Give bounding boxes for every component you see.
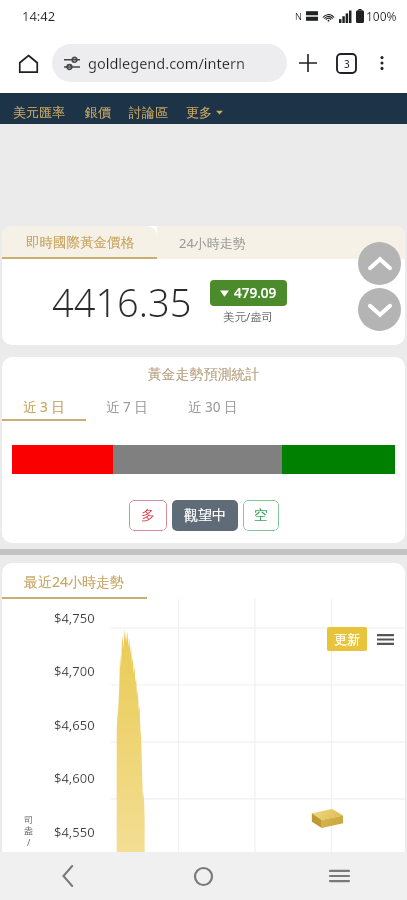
button[interactable]: 近 7 日	[86, 392, 168, 421]
button[interactable]: 479.09	[210, 280, 287, 306]
staticText: 近 7 日	[106, 398, 148, 416]
staticText: 觀望中	[184, 507, 226, 525]
button[interactable]: Recent apps	[271, 852, 407, 900]
button[interactable]: Tabs: 3	[327, 44, 365, 82]
staticText: $4,600	[54, 769, 95, 787]
staticText: 空	[254, 507, 268, 525]
button[interactable]: 更多	[186, 104, 223, 120]
button[interactable]: 最近24小時走勢	[2, 563, 147, 599]
button[interactable]: 空	[243, 500, 279, 531]
staticText: goldlegend.com/intern	[88, 53, 245, 73]
button[interactable]: 美元匯率	[13, 104, 65, 120]
staticText: 即時國際黃金價格	[26, 234, 134, 251]
button[interactable]: 更新	[327, 627, 367, 651]
staticText: 美元/盎司	[223, 309, 274, 325]
staticText: 更多	[186, 104, 212, 120]
staticText: $4,650	[54, 716, 95, 734]
staticText: 近 30 日	[188, 398, 238, 416]
button[interactable]: 多	[129, 500, 167, 531]
staticText: 近 3 日	[23, 398, 65, 416]
button[interactable]: 即時國際黃金價格	[2, 226, 157, 259]
staticText: 黃金走勢預測統計	[2, 366, 405, 384]
button[interactable]: Scroll up	[358, 242, 401, 285]
staticText: $4,700	[54, 662, 95, 680]
staticText: 美元匯率	[13, 104, 65, 120]
button[interactable]: goldlegend.com/intern	[52, 44, 287, 82]
staticText: $4,550	[54, 823, 95, 841]
staticText: 盎	[24, 825, 33, 836]
staticText: 司	[24, 814, 33, 825]
button[interactable]: Back	[0, 852, 135, 900]
button[interactable]: 近 30 日	[168, 392, 258, 421]
staticText: 4416.35	[52, 276, 192, 328]
button[interactable]: 24小時走勢	[157, 226, 405, 259]
staticText: 479.09	[234, 284, 277, 302]
staticText: 更新	[334, 631, 360, 647]
staticText: 3	[344, 57, 350, 71]
button[interactable]: Home	[135, 852, 271, 900]
button[interactable]: 近 3 日	[2, 392, 86, 421]
staticText: 討論區	[129, 104, 168, 120]
button[interactable]: Scroll down	[358, 288, 401, 331]
button[interactable]: Chart menu	[375, 629, 395, 649]
button[interactable]: New tab	[289, 44, 327, 82]
button[interactable]: Home	[8, 43, 48, 83]
staticText: 24小時走勢	[179, 234, 246, 252]
staticText: 多	[141, 507, 155, 525]
staticText: 最近24小時走勢	[24, 572, 125, 591]
staticText: 銀價	[85, 104, 111, 120]
button[interactable]: 討論區	[129, 104, 168, 120]
staticText: $4,750	[54, 609, 95, 627]
staticText: 14:42	[22, 7, 56, 25]
button[interactable]: 銀價	[85, 104, 111, 120]
button[interactable]: More options	[365, 46, 399, 80]
staticText: N	[295, 10, 302, 22]
button[interactable]: 觀望中	[172, 500, 238, 531]
staticText: 100%	[366, 8, 397, 24]
staticText: /	[27, 836, 31, 848]
